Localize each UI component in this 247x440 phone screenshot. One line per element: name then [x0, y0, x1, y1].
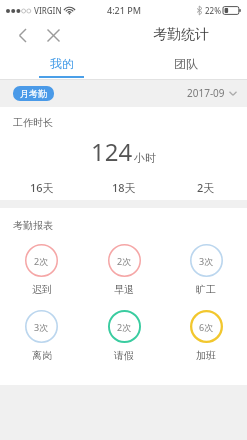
button[interactable]: 3次 [165, 244, 247, 296]
button[interactable]: 2017-09 [187, 86, 237, 100]
staticText: 考勤报表 [13, 219, 53, 232]
staticText: 124 [91, 135, 133, 168]
button[interactable]: 16天 [0, 180, 83, 200]
button[interactable]: Close [40, 22, 66, 48]
staticText: 迟到 [32, 283, 52, 296]
staticText: 2次 [34, 255, 49, 267]
button[interactable]: 月考勤 [13, 86, 54, 101]
staticText: 2017-09 [187, 86, 225, 100]
button[interactable]: 3次 [0, 310, 83, 362]
button[interactable]: 2次 [83, 244, 165, 296]
staticText: 4:21 PM [107, 4, 141, 16]
staticText: 2次 [117, 255, 132, 267]
staticText: 我的 [50, 56, 74, 71]
staticText: VIRGIN [34, 5, 62, 16]
button[interactable]: 6次 [165, 310, 247, 362]
staticText: 月考勤 [20, 88, 47, 99]
staticText: 考勤统计 [153, 26, 209, 44]
button[interactable]: 2天 [165, 180, 247, 200]
staticText: 2天 [197, 180, 215, 195]
staticText: 2次 [117, 321, 132, 333]
button[interactable]: 2次 [0, 244, 83, 296]
button[interactable]: Back [10, 22, 36, 48]
staticText: 22% [205, 5, 221, 16]
staticText: 16天 [30, 180, 54, 195]
staticText: 18天 [112, 180, 136, 195]
staticText: 离岗 [32, 349, 52, 362]
staticText: 6次 [199, 321, 214, 333]
staticText: 请假 [114, 349, 134, 362]
button[interactable]: 2次 [83, 310, 165, 362]
staticText: 早退 [114, 283, 134, 296]
staticText: 小时 [134, 151, 156, 165]
staticText: 旷工 [196, 283, 216, 296]
button[interactable]: 团队 [123, 50, 247, 79]
button[interactable]: 18天 [83, 180, 165, 200]
staticText: 3次 [199, 255, 214, 267]
staticText: 团队 [174, 56, 198, 71]
staticText: 加班 [196, 349, 216, 362]
button[interactable]: 我的 [0, 50, 123, 79]
staticText: 工作时长 [13, 116, 53, 129]
staticText: 3次 [34, 321, 49, 333]
